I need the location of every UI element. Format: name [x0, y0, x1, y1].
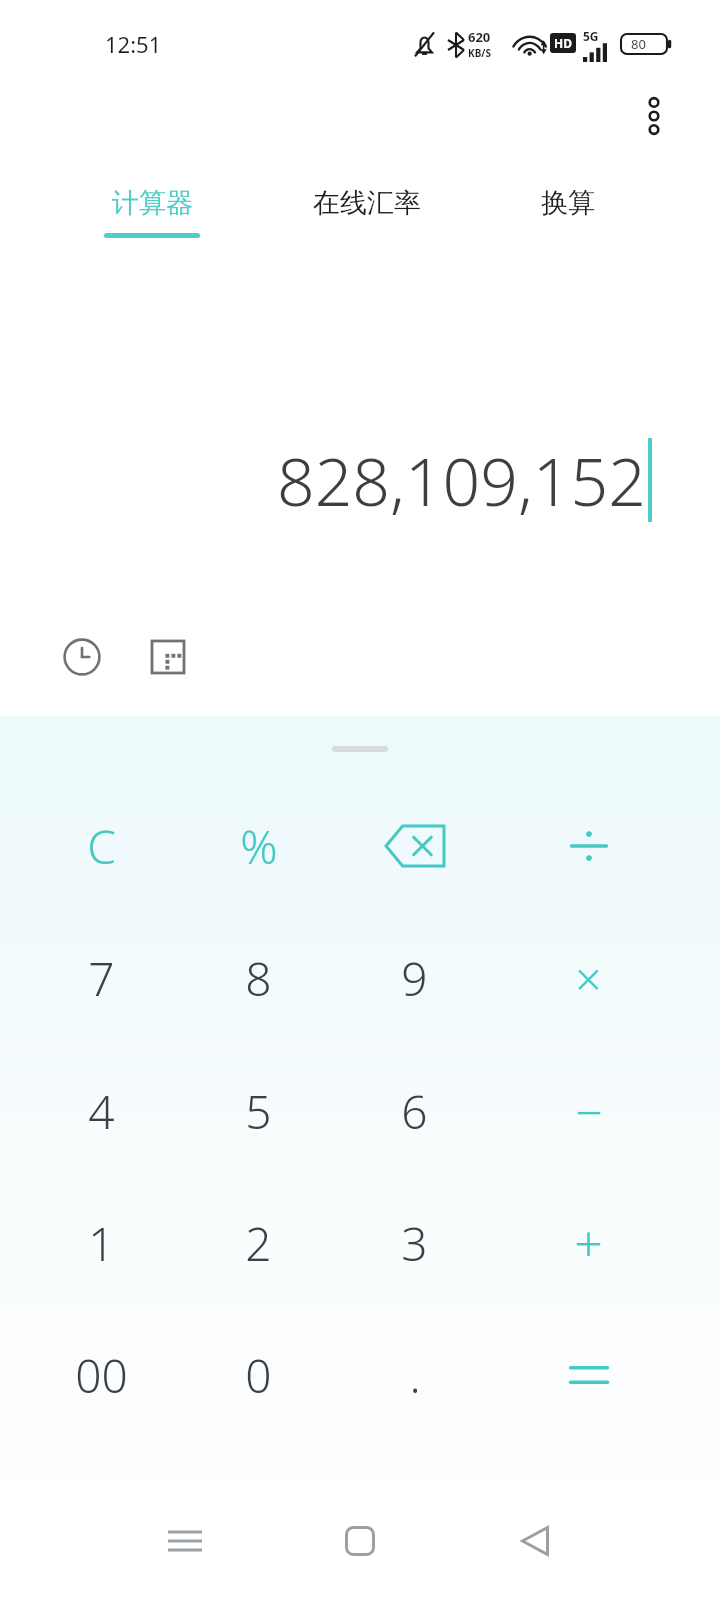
- button[interactable]: 7: [24, 913, 179, 1043]
- button[interactable]: .: [337, 1310, 492, 1440]
- staticText: 12:51: [105, 29, 162, 59]
- button[interactable]: 3: [337, 1178, 492, 1308]
- button[interactable]: %: [181, 781, 336, 911]
- button[interactable]: 00: [24, 1310, 179, 1440]
- staticText: 80: [631, 35, 646, 53]
- button[interactable]: Minus: [511, 1046, 666, 1176]
- button[interactable]: Back: [490, 1496, 580, 1586]
- button[interactable]: 9: [337, 913, 492, 1043]
- staticText: 5G: [583, 28, 599, 44]
- button[interactable]: 在线汇率: [267, 160, 467, 260]
- staticText: .: [409, 1344, 421, 1407]
- button[interactable]: Multiply: [511, 913, 666, 1043]
- staticText: 9: [401, 947, 428, 1010]
- staticText: −: [575, 1079, 603, 1144]
- staticText: 620: [468, 28, 491, 46]
- button[interactable]: 8: [181, 913, 336, 1043]
- staticText: 828,109,152: [277, 435, 646, 525]
- button[interactable]: 4: [24, 1046, 179, 1176]
- button[interactable]: Divide: [511, 781, 666, 911]
- button[interactable]: 计算器: [52, 160, 252, 260]
- button[interactable]: 5: [181, 1046, 336, 1176]
- button[interactable]: 0: [181, 1310, 336, 1440]
- button[interactable]: Backspace: [337, 781, 492, 911]
- staticText: 1: [88, 1212, 115, 1275]
- staticText: 2: [245, 1212, 272, 1275]
- staticText: C: [87, 815, 116, 878]
- staticText: 计算器: [112, 186, 193, 220]
- staticText: 00: [75, 1344, 128, 1407]
- button[interactable]: 换算: [468, 160, 668, 260]
- button[interactable]: 6: [337, 1046, 492, 1176]
- staticText: 6: [401, 1080, 428, 1143]
- staticText: +: [574, 1209, 603, 1277]
- staticText: 在线汇率: [313, 186, 421, 220]
- staticText: KB/S: [468, 46, 491, 60]
- button[interactable]: 1: [24, 1178, 179, 1308]
- staticText: 3: [401, 1212, 428, 1275]
- staticText: 7: [88, 947, 115, 1010]
- staticText: 8: [245, 947, 272, 1010]
- staticText: 0: [245, 1344, 272, 1407]
- staticText: ×: [575, 947, 602, 1010]
- staticText: 换算: [541, 186, 595, 220]
- button[interactable]: More options: [620, 82, 688, 150]
- staticText: HD: [554, 35, 572, 51]
- button[interactable]: 2: [181, 1178, 336, 1308]
- button[interactable]: History: [52, 627, 112, 687]
- button[interactable]: Recent apps: [140, 1496, 230, 1586]
- button[interactable]: Scientific mode: [138, 627, 198, 687]
- button[interactable]: C: [24, 781, 179, 911]
- staticText: 5: [245, 1080, 272, 1143]
- button[interactable]: Home: [315, 1496, 405, 1586]
- button[interactable]: Equals: [511, 1310, 666, 1440]
- button[interactable]: Plus: [511, 1178, 666, 1308]
- staticText: 4: [88, 1080, 115, 1143]
- staticText: %: [240, 815, 278, 878]
